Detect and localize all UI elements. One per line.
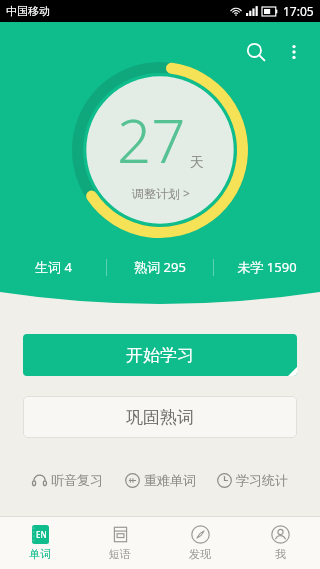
staticText: 巩固熟词 xyxy=(126,407,194,428)
staticText: 中国移动 xyxy=(6,4,50,18)
staticText: 27 xyxy=(117,99,186,181)
staticText: 发现 xyxy=(189,547,211,561)
button[interactable]: 巩固熟词 xyxy=(23,396,297,438)
button[interactable]: 重难单词 xyxy=(125,464,196,496)
button[interactable]: 未学 1590 xyxy=(214,250,320,284)
button[interactable]: 听音复习 xyxy=(32,464,103,496)
button[interactable]: 学习统计 xyxy=(217,464,288,496)
staticText: 听音复习 xyxy=(51,472,103,488)
staticText: 我 xyxy=(275,547,286,561)
button[interactable]: Search xyxy=(236,32,276,72)
staticText: 熟词 295 xyxy=(134,258,186,276)
staticText: 17:05 xyxy=(283,3,314,19)
staticText: 调整计划 > xyxy=(132,185,190,201)
button[interactable]: 27 xyxy=(117,99,204,201)
staticText: 开始学习 xyxy=(126,345,194,366)
button[interactable]: 熟词 295 xyxy=(107,250,213,284)
button[interactable]: 发现 xyxy=(160,517,240,569)
button[interactable]: 开始学习 xyxy=(23,334,297,376)
button[interactable]: 我 xyxy=(240,517,320,569)
staticText: 短语 xyxy=(109,547,131,561)
staticText: 未学 1590 xyxy=(237,258,297,276)
staticText: 生词 4 xyxy=(35,258,72,276)
staticText: 重难单词 xyxy=(144,472,196,488)
staticText: 学习统计 xyxy=(236,472,288,488)
button[interactable]: More options xyxy=(276,34,312,70)
staticText: 单词 xyxy=(29,547,51,561)
button[interactable]: 生词 4 xyxy=(0,250,106,284)
staticText: EN xyxy=(36,529,47,540)
button[interactable]: EN xyxy=(0,517,80,569)
staticText: 天 xyxy=(190,154,204,172)
button[interactable]: 短语 xyxy=(80,517,160,569)
